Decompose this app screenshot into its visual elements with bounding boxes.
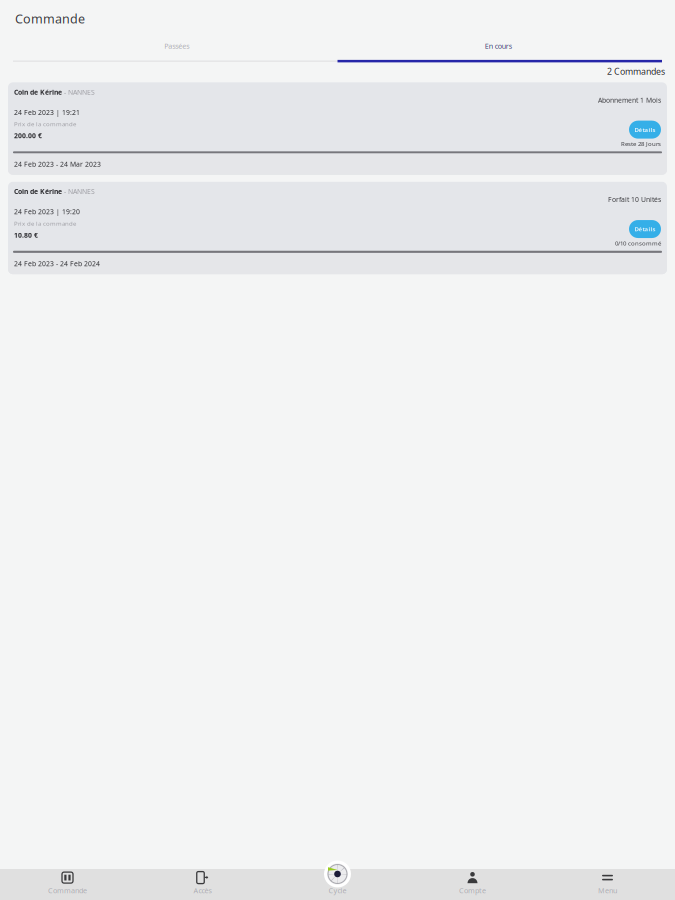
button[interactable]: Passées: [16, 27, 337, 60]
staticText: 24 Feb 2023 - 24 Mar 2023: [14, 159, 101, 169]
staticText: Prix de la commande: [14, 219, 76, 227]
button[interactable]: Accès: [135, 868, 270, 900]
staticText: Commande: [15, 10, 85, 27]
button[interactable]: Cycle: [270, 868, 405, 900]
staticText: 0/10 consommé: [615, 239, 661, 247]
staticText: Forfait 10 Unités: [608, 195, 661, 204]
button[interactable]: Cycle: [323, 860, 351, 888]
staticText: Détails: [634, 225, 655, 233]
staticText: Coin de Kérine: [14, 87, 62, 97]
staticText: 24 Feb 2023 - 24 Feb 2024: [14, 259, 100, 268]
button[interactable]: Commande: [0, 868, 135, 900]
staticText: Prix de la commande: [14, 120, 76, 128]
staticText: Menu: [598, 886, 617, 895]
button[interactable]: Détails: [629, 220, 661, 238]
staticText: Abonnement 1 Mois: [598, 95, 661, 105]
staticText: Coin de Kérine: [14, 187, 62, 196]
staticText: - NANNES: [62, 187, 95, 196]
staticText: 2 Commandes: [607, 65, 665, 77]
staticText: 200.00 €: [14, 131, 42, 140]
staticText: Détails: [634, 125, 655, 134]
staticText: Accès: [193, 886, 211, 895]
staticText: - NANNES: [62, 87, 95, 97]
button[interactable]: Menu: [540, 868, 675, 900]
staticText: 24 Feb 2023 | 19:20: [14, 207, 80, 216]
staticText: 24 Feb 2023 | 19:21: [14, 108, 80, 117]
button[interactable]: Détails: [629, 121, 661, 139]
staticText: En cours: [485, 41, 512, 51]
staticText: Cycle: [328, 886, 346, 895]
staticText: Passées: [164, 41, 189, 51]
button[interactable]: En cours: [337, 27, 659, 60]
staticText: Compte: [459, 886, 486, 895]
button[interactable]: Compte: [405, 868, 540, 900]
staticText: Reste 28 Jours: [621, 140, 661, 148]
staticText: 10.80 €: [14, 230, 38, 240]
staticText: Commande: [48, 886, 87, 895]
